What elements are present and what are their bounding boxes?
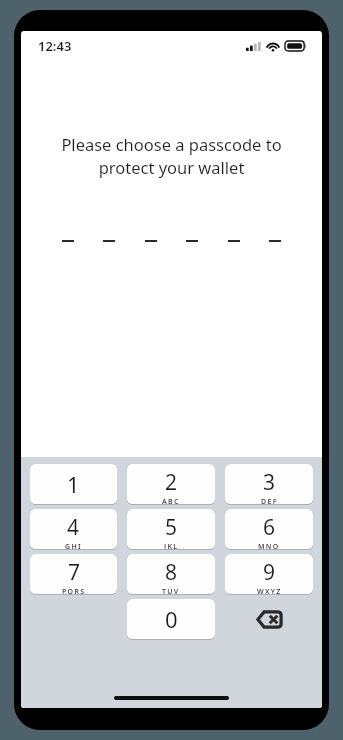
button[interactable]: 5 (127, 509, 215, 549)
staticText: TUV (162, 587, 180, 594)
staticText: WXYZ (257, 587, 282, 594)
staticText: Please choose a passcode to protect your… (33, 133, 310, 179)
staticText: DEF (261, 497, 278, 504)
staticText: MNO (258, 542, 280, 549)
button[interactable]: Delete (220, 597, 318, 642)
staticText: JKL (164, 542, 179, 549)
button[interactable]: 9 (225, 554, 313, 594)
button[interactable]: 8 (127, 554, 215, 594)
button[interactable]: 6 (225, 509, 313, 549)
staticText: 1 (67, 469, 80, 499)
staticText: 3 (263, 468, 276, 497)
staticText: ABC (162, 497, 180, 504)
staticText: 5 (165, 513, 178, 542)
button[interactable]: 2 (127, 464, 215, 504)
staticText: 8 (165, 558, 178, 587)
button[interactable]: 1 (30, 464, 117, 504)
button[interactable]: 0 (127, 599, 215, 639)
button[interactable]: 4 (30, 509, 117, 549)
staticText: GHI (65, 542, 82, 549)
staticText: 2 (165, 468, 178, 497)
staticText: PQRS (62, 587, 86, 594)
staticText: 9 (263, 558, 276, 587)
staticText: 7 (68, 558, 81, 587)
staticText: 4 (67, 513, 80, 542)
staticText: 12:43 (38, 37, 72, 55)
button[interactable]: 7 (30, 554, 117, 594)
staticText: 6 (263, 513, 276, 542)
staticText: 0 (165, 604, 178, 634)
button[interactable]: 3 (225, 464, 313, 504)
